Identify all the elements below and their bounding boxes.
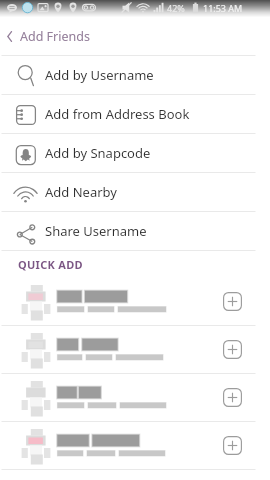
button[interactable]: Add by Snapcode <box>0 134 270 172</box>
button[interactable]: Add friend <box>0 326 270 373</box>
button[interactable]: Add friend <box>0 422 270 469</box>
staticText: 42% <box>167 2 185 14</box>
button[interactable]: Add friend <box>0 278 270 325</box>
button[interactable]: Add friend <box>218 383 247 412</box>
staticText: Share Username <box>45 222 147 240</box>
staticText: 11:53 AM <box>203 2 243 14</box>
button[interactable]: Add friend <box>218 431 247 460</box>
button[interactable]: Add friend <box>218 287 247 316</box>
button[interactable]: Add friend <box>0 374 270 421</box>
button[interactable]: Add Nearby <box>0 173 270 211</box>
staticText: Add by Username <box>45 66 154 84</box>
button[interactable]: Add from Address Book <box>0 95 270 133</box>
staticText: Add by Snapcode <box>45 144 151 162</box>
button[interactable]: Back <box>0 17 270 55</box>
staticText: Add Nearby <box>45 183 117 201</box>
staticText: Add from Address Book <box>45 105 190 123</box>
staticText: QUICK ADD <box>18 257 83 272</box>
button[interactable]: Add by Username <box>0 56 270 94</box>
button[interactable]: Share Username <box>0 212 270 250</box>
button[interactable]: Add friend <box>218 335 247 364</box>
staticText: Add Friends <box>20 28 90 45</box>
